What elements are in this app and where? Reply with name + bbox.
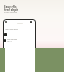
- staticText: Your refill plan: [5, 28, 18, 31]
- button[interactable]: Product: [4, 33, 7, 36]
- staticText: Next ship date: [7, 38, 18, 40]
- button[interactable]: Cart: [30, 21, 32, 23]
- staticText: free shpn: [4, 8, 19, 12]
- button[interactable]: Next ship date: [4, 38, 18, 42]
- staticText: Easy rfls,: [4, 5, 18, 9]
- staticText: Mar 14: [7, 40, 12, 42]
- staticText: Pause anytime: [4, 11, 18, 14]
